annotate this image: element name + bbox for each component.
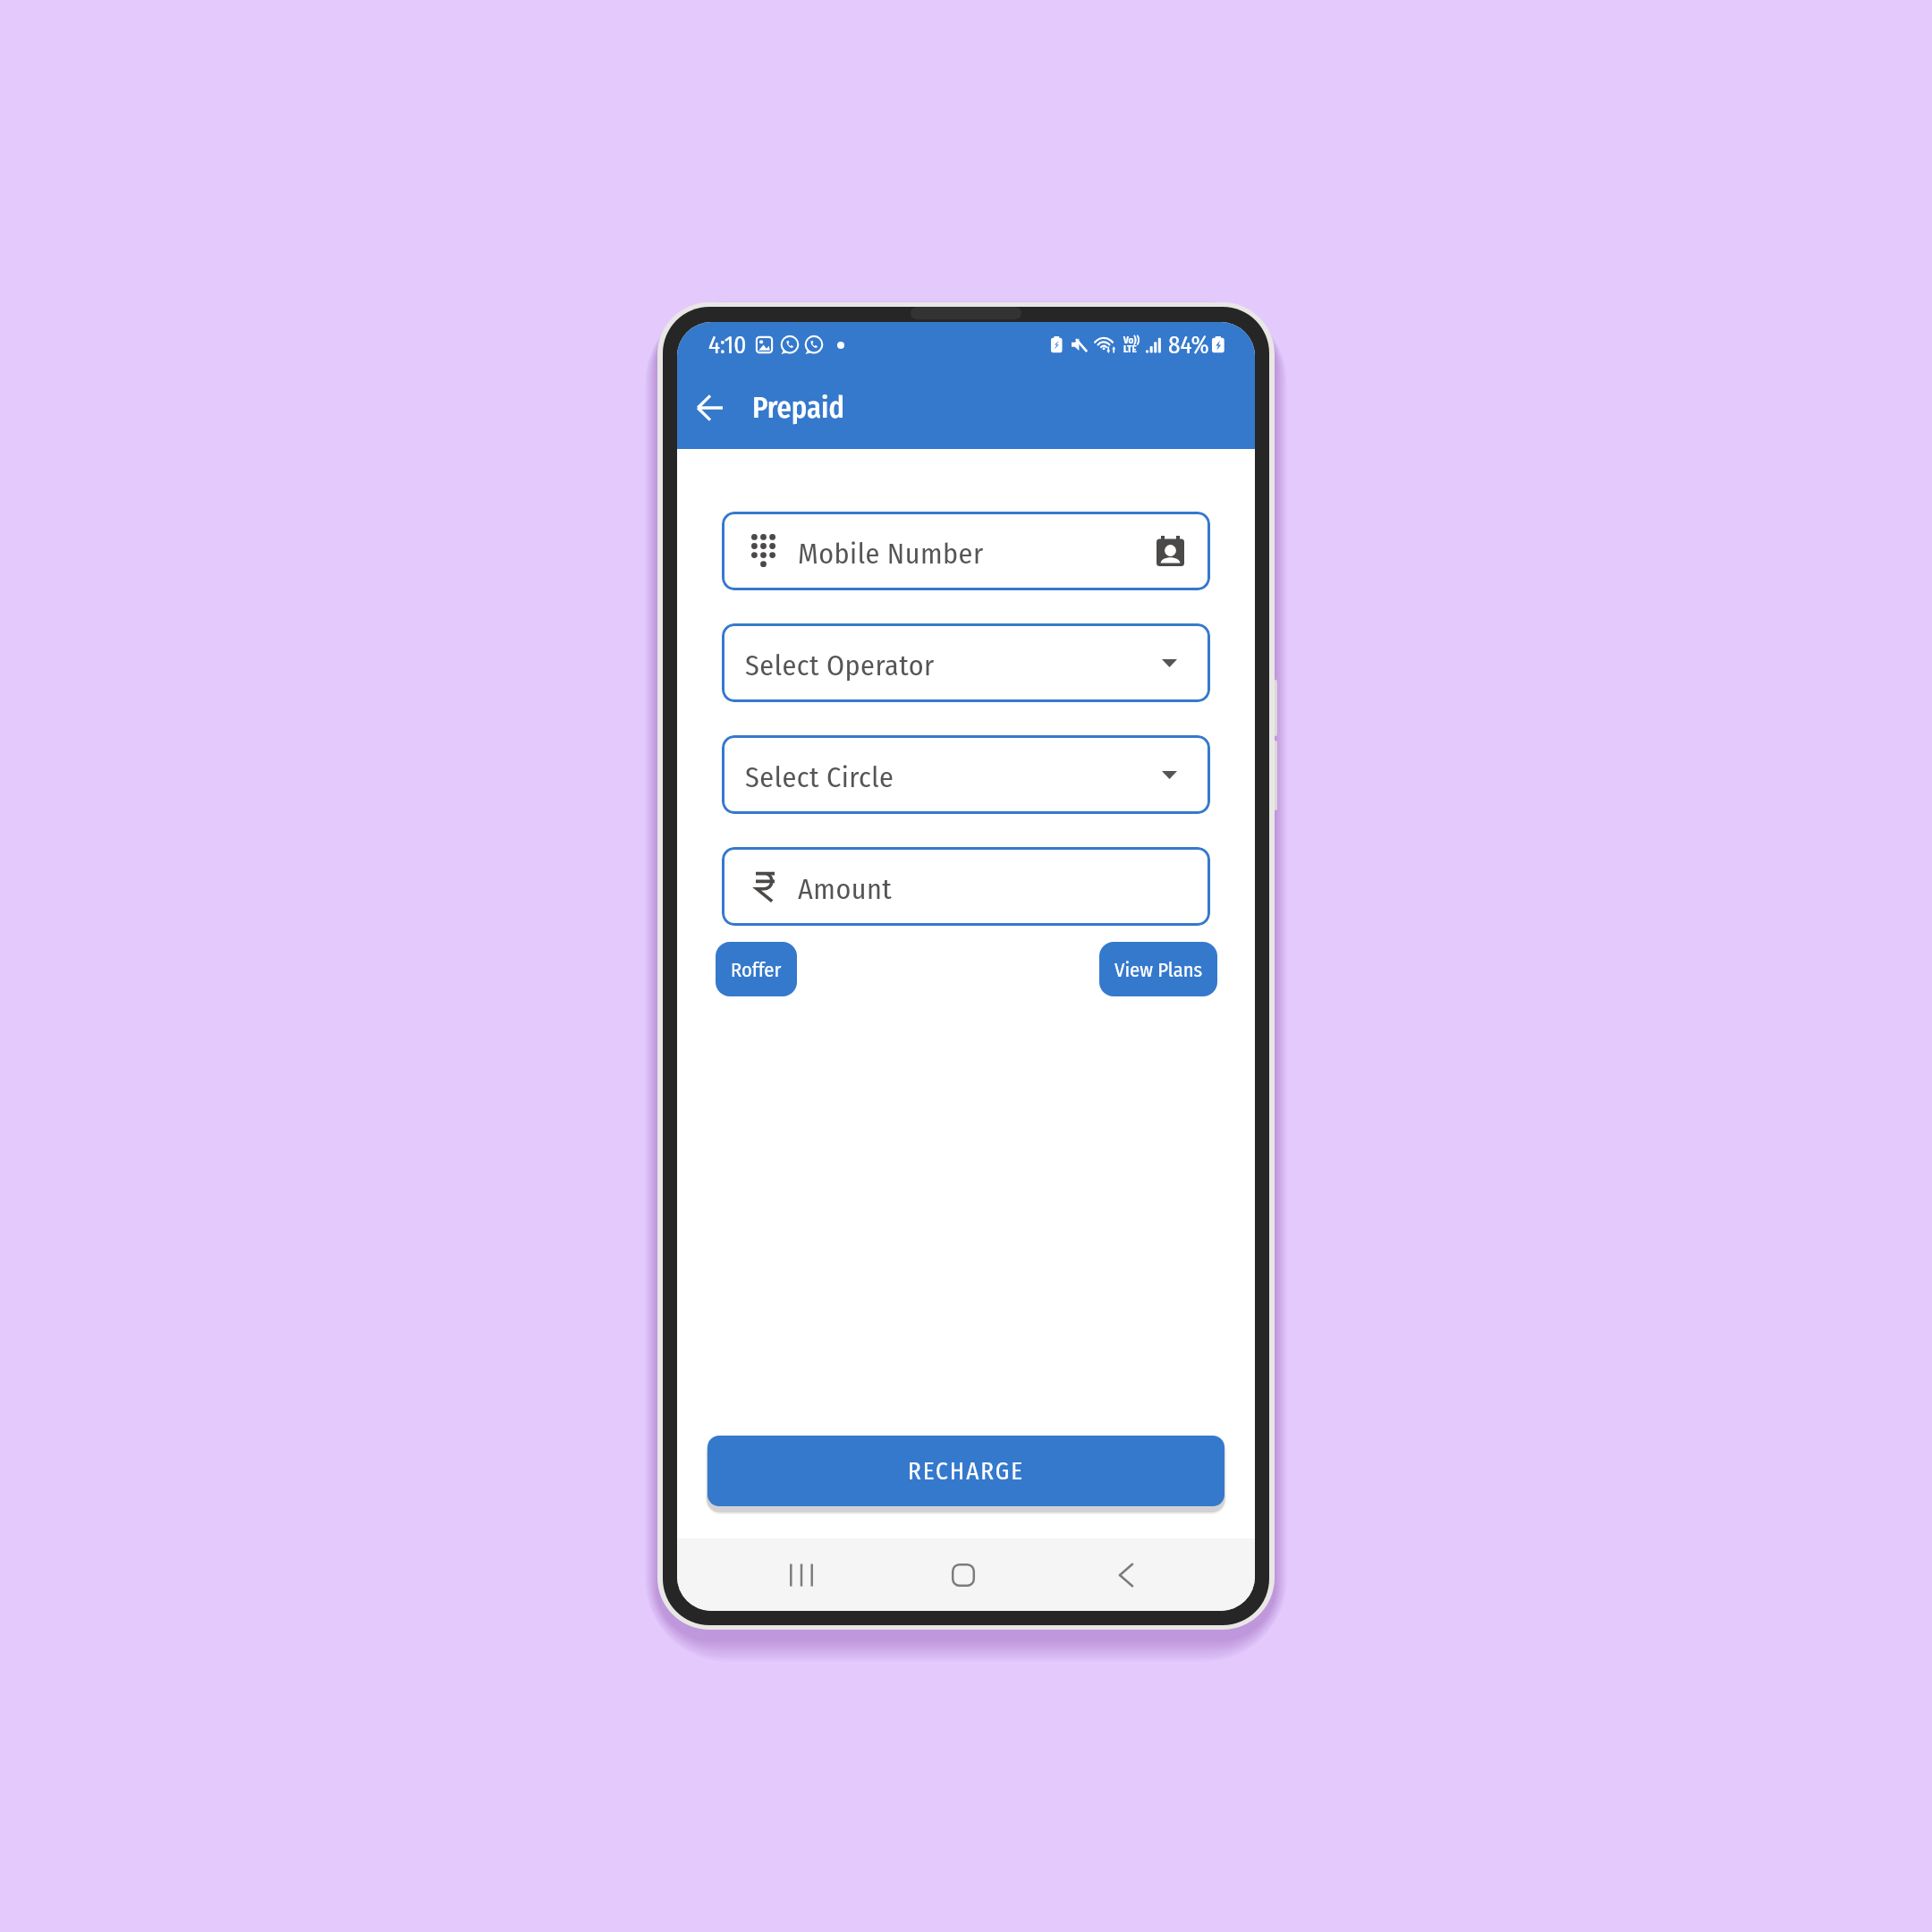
button[interactable]: Mobile Number bbox=[722, 512, 1210, 590]
button[interactable]: Pick contact bbox=[1156, 536, 1185, 566]
button[interactable]: Back bbox=[684, 382, 736, 434]
staticText: 4:10 bbox=[708, 331, 747, 360]
staticText: Roffer bbox=[731, 958, 782, 982]
staticText: Amount bbox=[798, 872, 893, 906]
staticText: 84% bbox=[1168, 331, 1209, 360]
staticText: LTE bbox=[1123, 343, 1137, 355]
button[interactable]: RECHARGE bbox=[708, 1436, 1224, 1506]
staticText: View Plans bbox=[1114, 958, 1203, 982]
button[interactable]: Amount bbox=[722, 847, 1210, 926]
button[interactable]: Home bbox=[926, 1538, 1001, 1611]
staticText: Vo)) bbox=[1123, 335, 1140, 346]
staticText: Select Operator bbox=[745, 648, 935, 682]
button[interactable]: Select Circle bbox=[722, 735, 1210, 814]
button[interactable]: Back bbox=[1089, 1538, 1164, 1611]
button[interactable]: Recent apps bbox=[764, 1538, 839, 1611]
staticText: Prepaid bbox=[752, 391, 845, 426]
staticText: Select Circle bbox=[745, 760, 894, 794]
staticText: RECHARGE bbox=[908, 1457, 1024, 1486]
button[interactable]: Select Operator bbox=[722, 623, 1210, 702]
staticText: Mobile Number bbox=[798, 537, 984, 571]
button[interactable]: Roffer bbox=[716, 942, 797, 996]
button[interactable]: View Plans bbox=[1099, 942, 1217, 996]
